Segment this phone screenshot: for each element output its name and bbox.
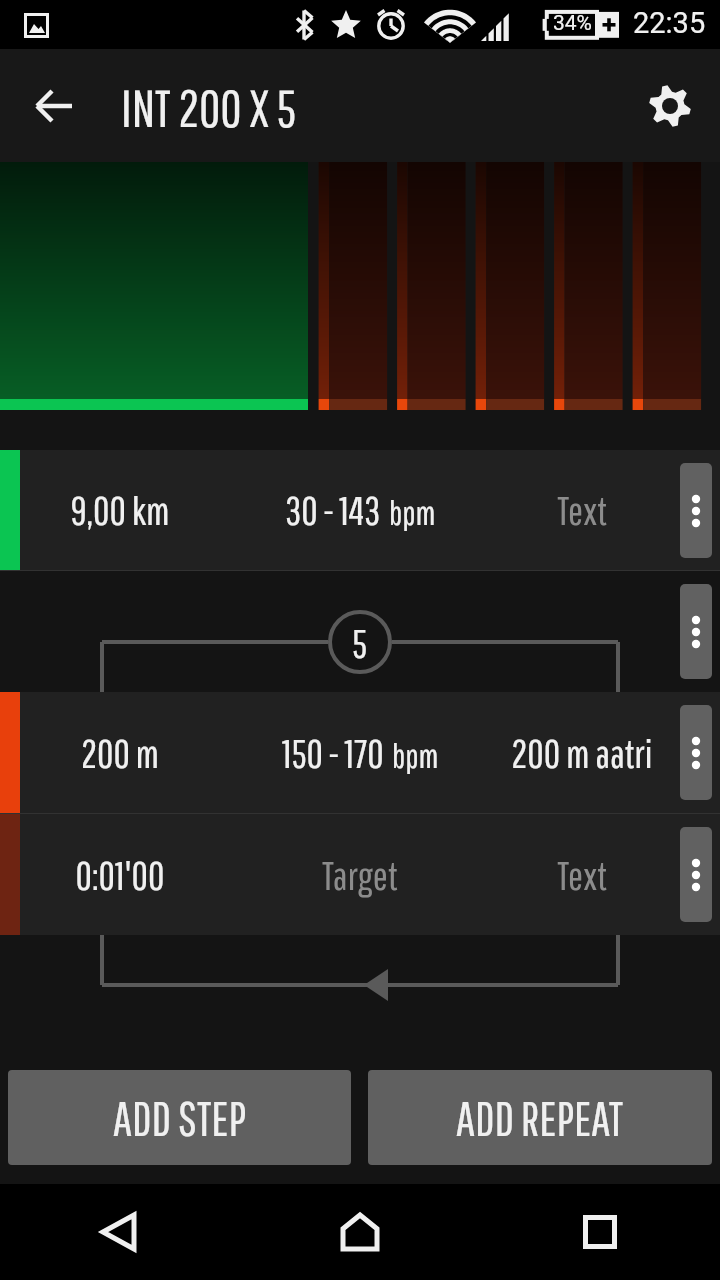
staticText: 200 m aatri [462, 730, 702, 776]
button[interactable]: Home [240, 1184, 480, 1280]
staticText: bpm [392, 736, 439, 775]
staticText: 150 - 170 [282, 730, 384, 776]
button[interactable]: More options [680, 584, 712, 679]
staticText: Text [462, 852, 702, 898]
staticText: Target [322, 852, 398, 898]
staticText: 9,00 km [20, 487, 220, 533]
button[interactable]: Back [24, 76, 84, 136]
button[interactable]: More options [680, 705, 712, 800]
staticText: 30 - 143 [285, 487, 381, 533]
staticText: INT 200 X 5 [121, 77, 297, 137]
button[interactable]: ADD REPEAT [368, 1070, 712, 1165]
button[interactable]: More options [680, 463, 712, 558]
button[interactable]: 9,00 km [0, 450, 720, 570]
staticText: bpm [389, 493, 436, 532]
staticText: 22:35 [633, 6, 706, 40]
button[interactable]: Settings [640, 76, 700, 136]
staticText: ADD STEP [113, 1090, 246, 1145]
staticText: Text [462, 487, 702, 533]
button[interactable]: 0:01'00 [0, 814, 720, 935]
button[interactable]: Recent apps [480, 1184, 720, 1280]
staticText: 5 [352, 620, 368, 666]
button[interactable]: ADD STEP [8, 1070, 351, 1165]
staticText: 34% [553, 11, 592, 36]
staticText: ADD REPEAT [456, 1090, 624, 1145]
staticText: 0:01'00 [20, 852, 220, 898]
staticText: 200 m [20, 730, 220, 776]
button[interactable]: Back [0, 1184, 240, 1280]
button[interactable]: More options [680, 827, 712, 922]
button[interactable]: 200 m [0, 692, 720, 813]
